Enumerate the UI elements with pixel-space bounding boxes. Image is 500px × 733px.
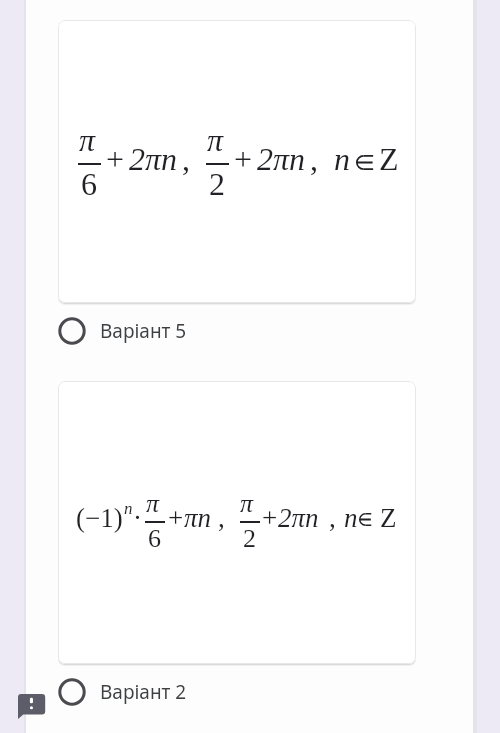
staticText: , (218, 503, 225, 533)
staticText: Варіант 2 (100, 679, 187, 705)
staticText: (−1) (76, 503, 123, 533)
staticText: + (234, 141, 253, 176)
staticText: + (106, 141, 125, 176)
staticText: 2πn (129, 141, 178, 176)
button[interactable]: π (58, 20, 416, 303)
staticText: · (133, 503, 142, 533)
staticText: n (344, 503, 358, 533)
staticText: Z (380, 503, 397, 533)
other: Варіант 2 (58, 678, 86, 706)
button[interactable]: (−1) (58, 381, 416, 664)
staticText: + (168, 503, 184, 533)
staticText: π (79, 122, 96, 157)
staticText: n (124, 499, 133, 518)
other: Варіант 5 (58, 317, 86, 345)
staticText: Z (379, 141, 399, 176)
staticText: 2 (209, 166, 225, 201)
staticText: π (207, 122, 224, 157)
staticText: Варіант 5 (100, 318, 187, 344)
button[interactable]: Варіант 5 (58, 303, 416, 359)
staticText: 2πn (278, 503, 319, 533)
staticText: 2 (243, 524, 256, 553)
staticText: , (310, 141, 318, 176)
staticText: 6 (81, 166, 97, 201)
staticText: πn (184, 503, 212, 533)
button[interactable]: Варіант 2 (58, 664, 416, 720)
staticText: n (334, 141, 350, 176)
staticText: , (182, 141, 190, 176)
staticText: 2πn (257, 141, 306, 176)
staticText: π (146, 489, 160, 518)
staticText: , (329, 503, 336, 533)
staticText: + (262, 503, 278, 533)
staticText: π (240, 489, 254, 518)
button[interactable]: Report a problem (18, 694, 46, 720)
staticText: 6 (148, 524, 161, 553)
